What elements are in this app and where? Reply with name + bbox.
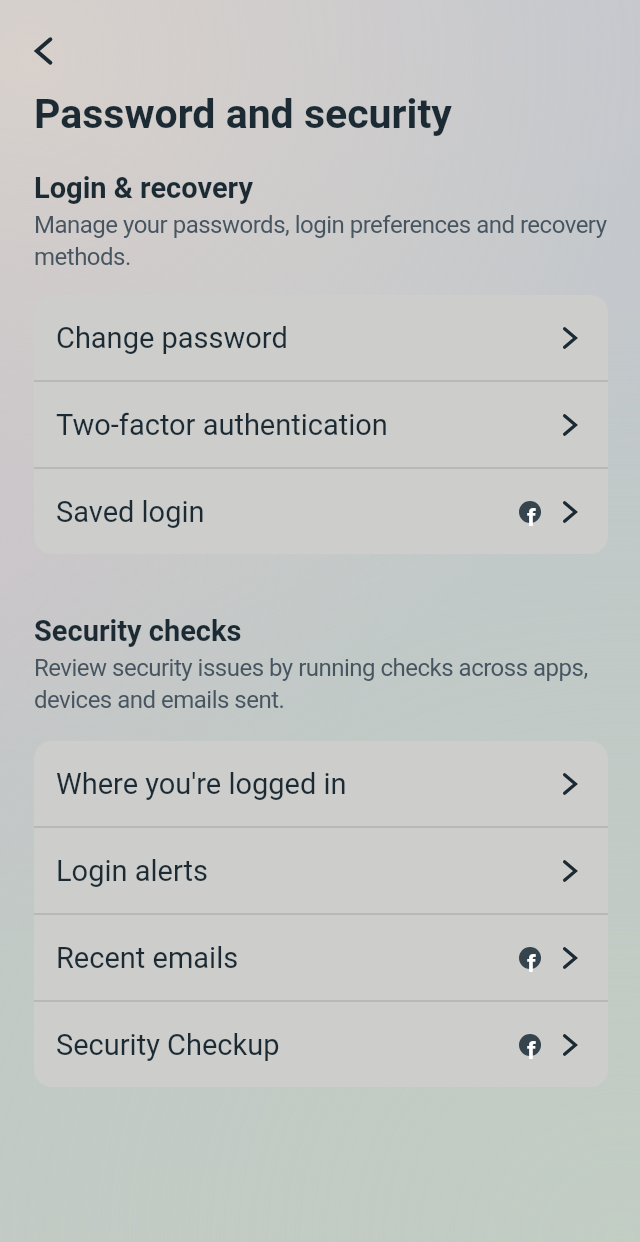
- button[interactable]: [34, 38, 54, 64]
- staticText: Two-factor authentication: [56, 408, 562, 442]
- staticText: Change password: [56, 321, 562, 355]
- button[interactable]: Recent emails: [34, 915, 608, 1000]
- staticText: Login & recovery: [34, 171, 253, 205]
- staticText: Security Checkup: [56, 1028, 519, 1062]
- button[interactable]: Where you're logged in: [34, 741, 608, 826]
- button[interactable]: Change password: [34, 295, 608, 380]
- staticText: Password and security: [34, 90, 452, 138]
- staticText: Where you're logged in: [56, 767, 562, 801]
- staticText: Manage your passwords, login preferences…: [34, 211, 608, 271]
- staticText: f: [527, 950, 536, 972]
- staticText: f: [527, 504, 536, 526]
- button[interactable]: Saved login: [34, 469, 608, 554]
- button[interactable]: Two-factor authentication: [34, 382, 608, 467]
- staticText: f: [527, 1037, 536, 1059]
- button[interactable]: Login alerts: [34, 828, 608, 913]
- button[interactable]: Security Checkup: [34, 1002, 608, 1087]
- staticText: Login alerts: [56, 854, 562, 888]
- staticText: Recent emails: [56, 941, 519, 975]
- staticText: Security checks: [34, 614, 242, 648]
- staticText: Review security issues by running checks…: [34, 654, 608, 714]
- staticText: Saved login: [56, 495, 519, 529]
